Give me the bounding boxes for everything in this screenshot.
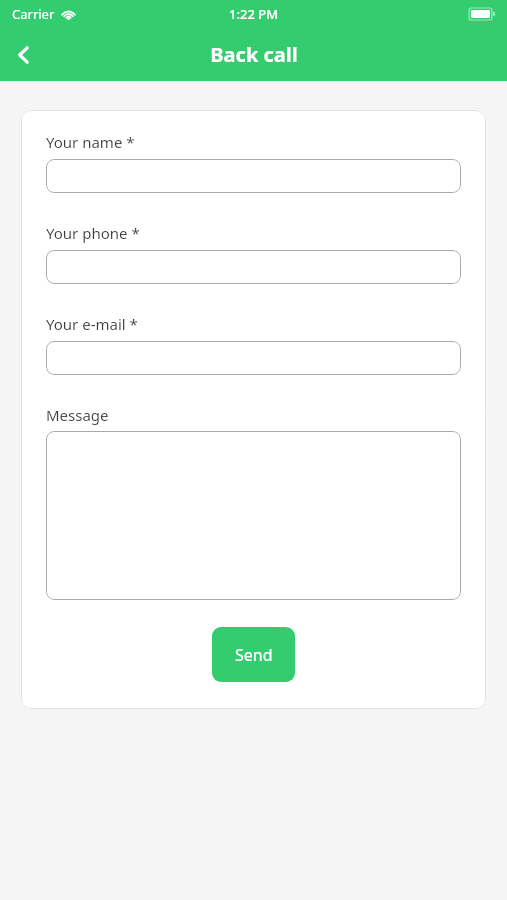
button[interactable]: Send [212, 627, 295, 682]
button[interactable] [46, 250, 461, 284]
staticText: 1:22 PM [229, 5, 279, 23]
button[interactable] [46, 341, 461, 375]
staticText: Your phone * [46, 223, 140, 243]
staticText: Your e-mail * [46, 314, 138, 334]
staticText: Your name * [46, 132, 135, 152]
button[interactable] [46, 431, 461, 600]
staticText: Message [46, 405, 109, 425]
button[interactable]: Back [0, 31, 48, 79]
staticText: Carrier [12, 5, 55, 23]
button[interactable] [46, 159, 461, 193]
staticText: Back call [210, 41, 298, 68]
staticText: Send [235, 644, 273, 666]
